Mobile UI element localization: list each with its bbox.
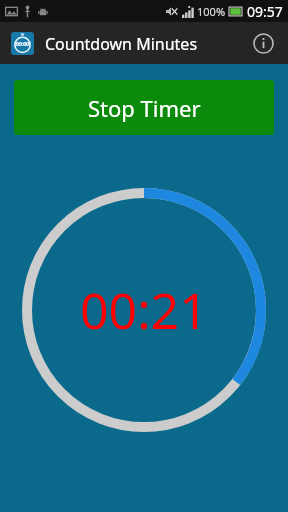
staticText: 09:57 bbox=[247, 2, 283, 21]
staticText: Stop Timer bbox=[88, 93, 201, 123]
button[interactable]: Stop Timer bbox=[14, 80, 274, 135]
staticText: Countdown Minutes bbox=[45, 33, 198, 55]
button[interactable]: About bbox=[246, 26, 280, 60]
staticText: 00:00 bbox=[16, 41, 29, 48]
staticText: 00:21 bbox=[80, 276, 208, 344]
staticText: 100% bbox=[197, 4, 226, 19]
